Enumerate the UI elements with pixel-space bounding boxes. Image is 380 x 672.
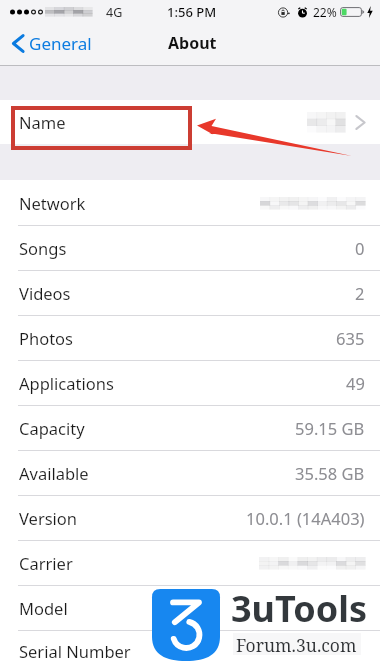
button[interactable]: Available — [0, 450, 380, 495]
staticText: 1:56 PM — [167, 3, 217, 21]
staticText: Songs — [19, 237, 67, 259]
staticText: 49 — [346, 372, 365, 394]
staticText: 22% — [313, 4, 337, 20]
staticText: 2 — [355, 282, 365, 304]
staticText: About — [168, 32, 217, 54]
staticText: 635 — [336, 327, 365, 349]
button[interactable]: Name — [0, 100, 380, 144]
staticText: 4G — [106, 4, 123, 21]
staticText: Photos — [19, 327, 74, 349]
staticText: Serial Number — [19, 640, 131, 662]
staticText: Available — [19, 462, 89, 484]
staticText: Version — [19, 507, 78, 529]
staticText: Name — [19, 111, 66, 133]
button[interactable]: Photos — [0, 315, 380, 360]
staticText: Applications — [19, 372, 114, 394]
staticText: 0 — [355, 237, 365, 259]
staticText: General — [29, 32, 92, 55]
button[interactable]: Network — [0, 180, 380, 225]
button[interactable]: Version — [0, 495, 380, 540]
staticText: Network — [19, 192, 86, 214]
button[interactable]: Carrier — [0, 540, 380, 585]
button[interactable]: Model — [0, 585, 380, 630]
staticText: 35.58 GB — [295, 462, 365, 484]
staticText: Forum.3u.com — [236, 633, 357, 657]
button[interactable]: Serial Number — [0, 630, 380, 672]
button[interactable]: Applications — [0, 360, 380, 405]
staticText: 59.15 GB — [295, 417, 365, 439]
staticText: 3uTools — [231, 584, 368, 633]
staticText: 10.0.1 (14A403) — [246, 507, 365, 529]
staticText: Videos — [19, 282, 71, 304]
button[interactable]: Capacity — [0, 405, 380, 450]
staticText: Carrier — [19, 552, 73, 574]
button[interactable]: Songs — [0, 225, 380, 270]
button[interactable]: Videos — [0, 270, 380, 315]
button[interactable]: General — [1, 27, 100, 60]
staticText: Model — [19, 597, 68, 619]
staticText: Capacity — [19, 417, 85, 439]
